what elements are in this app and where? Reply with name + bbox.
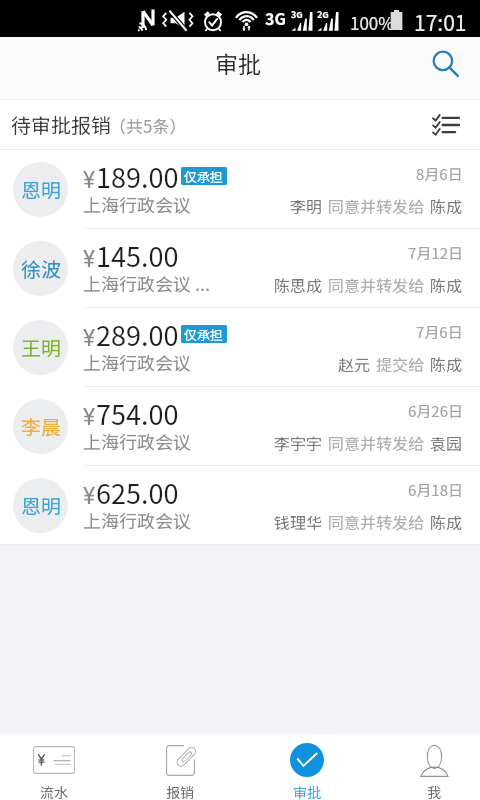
button[interactable]: 我 xyxy=(374,734,480,800)
button[interactable]: 恩明 xyxy=(0,150,480,229)
staticText: ¥ xyxy=(83,167,96,194)
staticText: 李宇宇 xyxy=(274,431,323,454)
button[interactable]: 审批 xyxy=(247,734,367,800)
staticText: 审批 xyxy=(215,46,261,79)
staticText: 报销 xyxy=(166,782,194,800)
staticText: 赵元 xyxy=(338,352,371,375)
staticText: 上海行政会议 ... xyxy=(83,270,211,296)
staticText: 17:01 xyxy=(414,7,467,37)
staticText: 上海行政会议 xyxy=(83,191,191,217)
staticText: 钱理华 xyxy=(274,510,323,533)
staticText: 2G xyxy=(317,8,329,21)
staticText: ¥ xyxy=(83,325,96,352)
staticText: 仅承担 xyxy=(184,325,224,343)
staticText: 提交给 xyxy=(376,352,425,375)
staticText: 陈成 xyxy=(430,352,463,375)
staticText: 145.00 xyxy=(96,236,179,275)
staticText: ¥ xyxy=(83,483,96,510)
button[interactable]: 李晨 xyxy=(0,387,480,466)
staticText: 陈成 xyxy=(430,194,463,217)
staticText: 同意并转发给 xyxy=(328,273,425,296)
staticText: 3G xyxy=(291,8,303,21)
staticText: ¥ xyxy=(83,246,96,273)
staticText: 754.00 xyxy=(96,394,179,433)
staticText: 陈成 xyxy=(430,510,463,533)
staticText: 上海行政会议 xyxy=(83,428,191,454)
staticText: 上海行政会议 xyxy=(83,507,191,533)
staticText: 恩明 xyxy=(21,491,61,520)
staticText: 7月12日 xyxy=(408,242,463,264)
staticText: ¥ xyxy=(83,404,96,431)
staticText: 7月6日 xyxy=(416,321,463,343)
staticText: 流水 xyxy=(40,782,68,800)
staticText: 100% xyxy=(350,10,394,35)
staticText: 恩明 xyxy=(21,175,61,204)
button[interactable]: 恩明 xyxy=(0,466,480,545)
button[interactable]: 流水 xyxy=(0,734,114,800)
staticText: 王明 xyxy=(21,333,61,362)
button[interactable]: Search xyxy=(424,42,468,86)
staticText: 陈成 xyxy=(430,273,463,296)
staticText: 待审批报销 xyxy=(11,110,111,139)
staticText: 同意并转发给 xyxy=(328,510,425,533)
button[interactable]: 徐波 xyxy=(0,229,480,308)
staticText: 625.00 xyxy=(96,473,179,512)
staticText: 仅承担 xyxy=(184,167,224,185)
staticText: 袁园 xyxy=(430,431,463,454)
staticText: 陈思成 xyxy=(274,273,323,296)
staticText: 289.00 xyxy=(96,315,179,354)
staticText: 上海行政会议 xyxy=(83,349,191,375)
staticText: 我 xyxy=(427,782,441,800)
staticText: 李明 xyxy=(290,194,323,217)
button[interactable]: 王明 xyxy=(0,308,480,387)
staticText: 徐波 xyxy=(21,254,61,283)
staticText: 8月6日 xyxy=(416,163,463,185)
staticText: 6月26日 xyxy=(408,400,463,422)
staticText: 3G xyxy=(265,6,286,29)
staticText: 审批 xyxy=(293,782,321,800)
staticText: 6月18日 xyxy=(408,479,463,501)
staticText: 189.00 xyxy=(96,157,179,196)
staticText: 同意并转发给 xyxy=(328,431,425,454)
button[interactable]: Filter list xyxy=(426,105,466,145)
staticText: （共5条） xyxy=(109,113,187,138)
staticText: 同意并转发给 xyxy=(328,194,425,217)
staticText: 李晨 xyxy=(21,412,61,441)
button[interactable]: 报销 xyxy=(120,734,240,800)
